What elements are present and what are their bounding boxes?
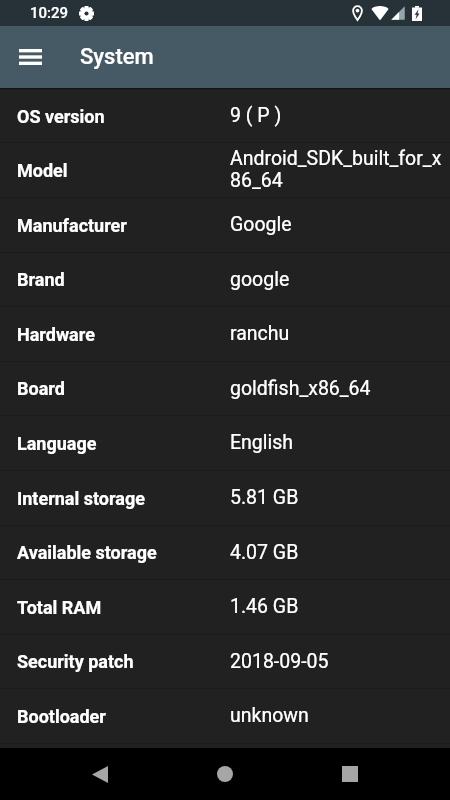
staticText: System <box>80 44 154 70</box>
staticText: Manufacturer <box>17 215 230 236</box>
staticText: Android_SDK_built_for_x86_64 <box>230 148 450 192</box>
button[interactable]: Brand <box>0 253 450 306</box>
staticText: 1.46 GB <box>230 596 299 618</box>
button[interactable]: Internal storage <box>0 471 450 525</box>
staticText: google <box>230 269 290 291</box>
staticText: Security patch <box>17 651 230 672</box>
button[interactable]: Model <box>0 143 450 197</box>
button[interactable]: Security patch <box>0 635 450 688</box>
staticText: 4.07 GB <box>230 542 299 564</box>
staticText: 2018-09-05 <box>230 651 329 673</box>
staticText: Google <box>230 214 292 236</box>
staticText: Hardware <box>17 324 230 345</box>
button[interactable]: OS version <box>0 90 450 142</box>
button[interactable]: Home <box>201 750 249 798</box>
staticText: unknown <box>230 705 309 727</box>
staticText: Bootloader <box>17 706 230 727</box>
staticText: English <box>230 432 294 454</box>
button[interactable]: Back <box>76 750 124 798</box>
staticText: ranchu <box>230 323 290 345</box>
button[interactable]: Available storage <box>0 526 450 579</box>
button[interactable]: Language <box>0 416 450 470</box>
button[interactable]: Board <box>0 362 450 415</box>
button[interactable]: Manufacturer <box>0 198 450 252</box>
staticText: Model <box>17 160 230 181</box>
staticText: Total RAM <box>17 597 230 618</box>
button[interactable]: Total RAM <box>0 580 450 634</box>
staticText: Brand <box>17 269 230 290</box>
staticText: Language <box>17 433 230 454</box>
button[interactable]: Recent apps <box>326 750 374 798</box>
staticText: 10:29 <box>30 4 69 22</box>
button[interactable]: Bootloader <box>0 689 450 743</box>
staticText: OS version <box>17 106 230 127</box>
button[interactable]: Open navigation menu <box>0 26 60 88</box>
staticText: goldfish_x86_64 <box>230 378 371 400</box>
staticText: 5.81 GB <box>230 487 299 509</box>
staticText: Board <box>17 378 230 399</box>
staticText: 9 ( P ) <box>230 105 282 127</box>
button[interactable]: Hardware <box>0 307 450 361</box>
staticText: Available storage <box>17 542 230 563</box>
staticText: Internal storage <box>17 488 230 509</box>
